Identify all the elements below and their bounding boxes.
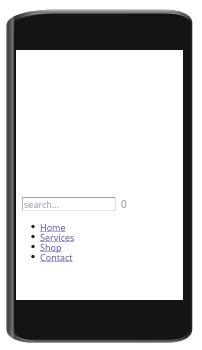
button[interactable]: Home bbox=[40, 221, 66, 233]
staticText: 0 bbox=[121, 197, 127, 211]
staticText: search... bbox=[24, 198, 60, 210]
button[interactable]: Shop bbox=[40, 241, 62, 253]
button[interactable]: Contact bbox=[40, 251, 73, 263]
button[interactable]: search... bbox=[22, 197, 116, 211]
button[interactable]: Services bbox=[40, 231, 75, 243]
